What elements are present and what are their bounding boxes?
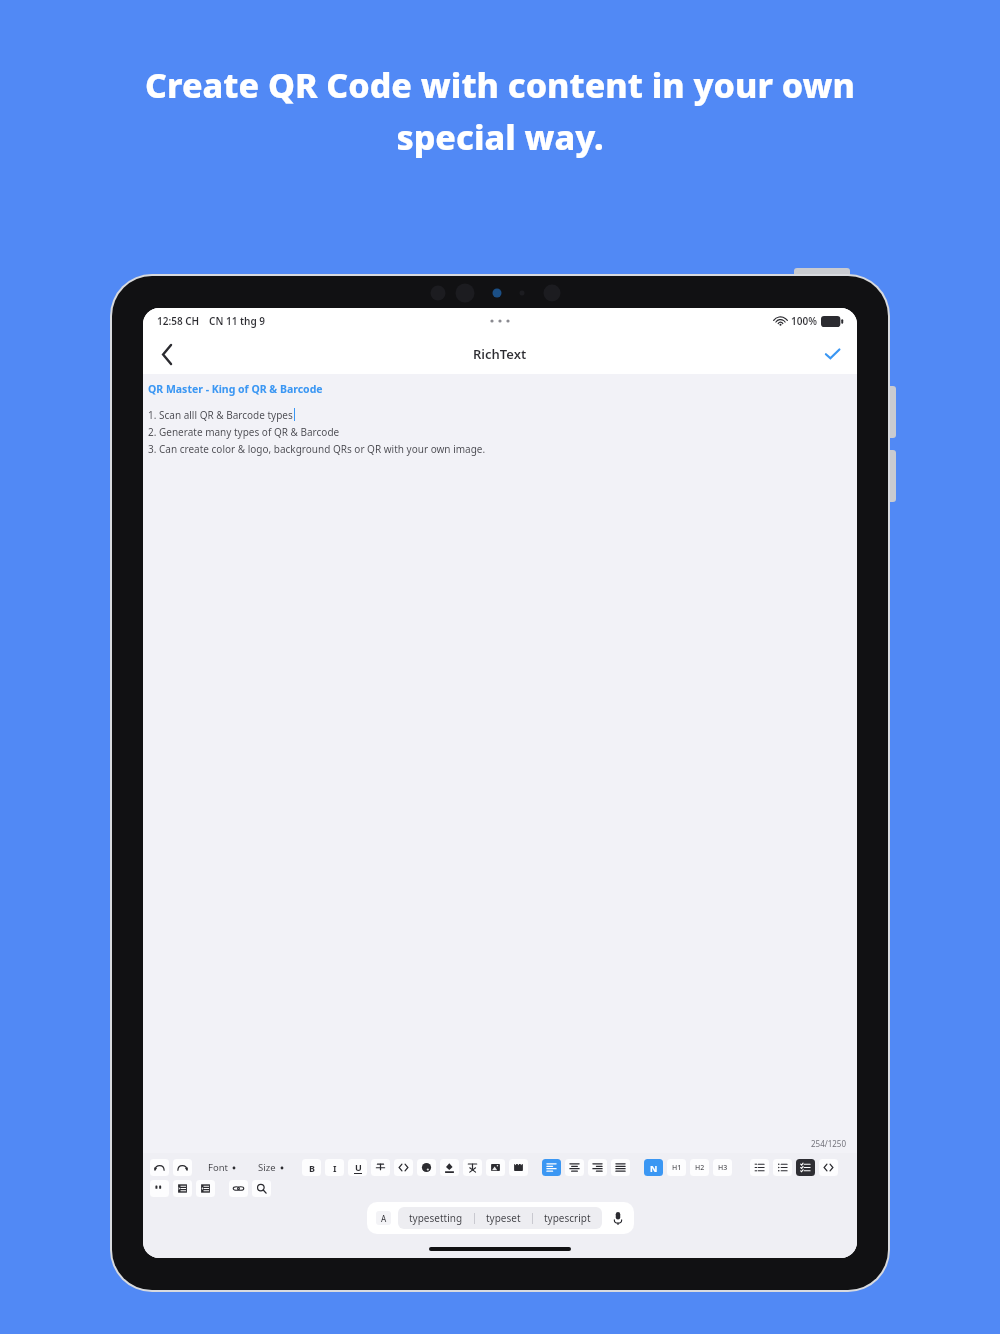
staticText: 3. Can create color & logo, background Q…	[148, 442, 486, 456]
button[interactable]: Italic	[325, 1159, 344, 1176]
button[interactable]: Heading 1	[667, 1159, 686, 1176]
staticText: B	[309, 1162, 315, 1174]
staticText: 2. Generate many types of QR & Barcode	[148, 425, 340, 439]
button[interactable]: Numbered list	[750, 1159, 769, 1176]
staticText: H2	[695, 1163, 705, 1173]
button[interactable]: Search	[252, 1180, 271, 1197]
button[interactable]: Align right	[588, 1159, 607, 1176]
button[interactable]: Strikethrough	[371, 1159, 390, 1176]
button[interactable]: Code block	[819, 1159, 838, 1176]
staticText: 254/1250	[811, 1138, 847, 1149]
staticText: I	[333, 1162, 337, 1174]
button[interactable]: Done	[813, 335, 851, 373]
staticText: 12:58 CH	[157, 314, 200, 328]
staticText: typesetting	[409, 1211, 463, 1225]
staticText: typeset	[486, 1211, 521, 1225]
staticText: typescript	[544, 1211, 591, 1225]
staticText: H1	[672, 1163, 682, 1173]
button[interactable]: Dictate	[608, 1209, 628, 1227]
button[interactable]: Underline	[348, 1159, 367, 1176]
button[interactable]: Back	[147, 334, 187, 374]
button[interactable]: Bold	[302, 1159, 321, 1176]
staticText: CN 11 thg 9	[209, 314, 265, 328]
button[interactable]: Highlight	[440, 1159, 459, 1176]
button[interactable]: Checklist	[796, 1159, 815, 1176]
button[interactable]: Redo	[173, 1159, 192, 1176]
staticText: QR Master - King of QR & Barcode	[148, 382, 323, 396]
button[interactable]: Normal text	[644, 1159, 663, 1176]
button[interactable]: typesetting	[398, 1207, 474, 1229]
button[interactable]: Inline code	[394, 1159, 413, 1176]
staticText: special way.	[396, 114, 604, 160]
staticText: A	[381, 1213, 387, 1224]
button[interactable]: Clear formatting	[463, 1159, 482, 1176]
button[interactable]: Quote	[150, 1180, 169, 1197]
button[interactable]: Insert video	[509, 1159, 528, 1176]
button[interactable]: Align left	[542, 1159, 561, 1176]
button[interactable]: typeset	[475, 1207, 532, 1229]
button[interactable]: Undo	[150, 1159, 169, 1176]
button[interactable]: Heading 2	[690, 1159, 709, 1176]
staticText: Size	[258, 1161, 276, 1174]
staticText: N	[650, 1162, 658, 1174]
staticText: U	[355, 1161, 362, 1173]
button[interactable]: Bulleted list	[773, 1159, 792, 1176]
button[interactable]: Indent	[173, 1180, 192, 1197]
button[interactable]: Outdent	[196, 1180, 215, 1197]
staticText: Create QR Code with content in your own	[145, 62, 855, 108]
button[interactable]: Insert image	[486, 1159, 505, 1176]
staticText: H3	[718, 1163, 728, 1173]
button[interactable]: Text color	[417, 1159, 436, 1176]
button[interactable]: Text options	[373, 1209, 393, 1227]
button[interactable]: typescript	[533, 1207, 602, 1229]
button[interactable]: Size	[254, 1158, 288, 1177]
staticText: 100%	[791, 314, 817, 328]
button[interactable]: Justify	[611, 1159, 630, 1176]
button[interactable]: Heading 3	[713, 1159, 732, 1176]
button[interactable]: Insert link	[229, 1180, 248, 1197]
button[interactable]: Font	[204, 1158, 240, 1177]
staticText: RichText	[473, 345, 527, 363]
staticText: Font	[208, 1161, 228, 1174]
button[interactable]: Align center	[565, 1159, 584, 1176]
staticText: 1. Scan alll QR & Barcode types	[148, 408, 293, 422]
